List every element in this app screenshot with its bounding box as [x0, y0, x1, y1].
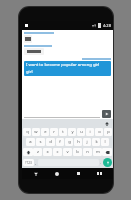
staticText: girl	[26, 69, 33, 75]
button[interactable]: c	[53, 148, 62, 156]
button[interactable]: Menu	[92, 168, 106, 179]
button[interactable]: ?123	[23, 159, 34, 166]
staticText: ?123	[25, 161, 32, 165]
button[interactable]: w	[32, 128, 40, 136]
button[interactable]: d	[46, 138, 55, 146]
button[interactable]: Message input	[24, 109, 100, 118]
button[interactable]: Back	[29, 168, 43, 179]
staticText: 4:28	[103, 23, 111, 28]
button[interactable]: i	[86, 128, 94, 136]
button[interactable]: Shift	[23, 148, 33, 156]
staticText: l	[104, 139, 106, 145]
button[interactable]: g	[65, 138, 73, 146]
staticText: c	[56, 149, 59, 155]
staticText: s	[39, 139, 42, 145]
staticText: j	[86, 139, 88, 145]
staticText: d	[49, 139, 52, 145]
staticText: y	[71, 129, 74, 135]
button[interactable]: b	[73, 148, 82, 156]
staticText: z	[37, 149, 39, 155]
staticText: b	[76, 149, 79, 155]
button[interactable]: q	[23, 128, 31, 136]
button[interactable]: Received message	[24, 48, 44, 55]
staticText: a	[29, 139, 32, 145]
button[interactable]: n	[83, 148, 92, 156]
staticText: .	[100, 160, 102, 165]
staticText: u	[80, 129, 83, 135]
button[interactable]: t	[59, 128, 67, 136]
staticText: x	[46, 149, 49, 155]
staticText: w	[34, 129, 38, 135]
staticText: h	[77, 139, 80, 145]
button[interactable]: Backspace	[102, 148, 112, 156]
button[interactable]: h	[74, 138, 82, 146]
staticText: q	[26, 129, 29, 135]
button[interactable]: Send	[102, 110, 111, 118]
button[interactable]: s	[36, 138, 45, 146]
staticText: t	[62, 129, 64, 135]
button[interactable]: k	[92, 138, 100, 146]
button[interactable]: r	[50, 128, 58, 136]
staticText: g	[68, 139, 71, 145]
button[interactable]: y	[68, 128, 76, 136]
staticText: r	[53, 129, 55, 135]
button[interactable]: l	[101, 138, 109, 146]
button[interactable]: v	[63, 148, 72, 156]
staticText: n	[86, 149, 89, 155]
staticText: I want to become popular among girl	[26, 62, 100, 68]
staticText: k	[95, 139, 98, 145]
button[interactable]: u	[77, 128, 85, 136]
button[interactable]: x	[43, 148, 52, 156]
button[interactable]: Voice input	[103, 158, 112, 167]
staticText: f	[59, 139, 61, 145]
button[interactable]: Received message	[24, 35, 32, 43]
button[interactable]: I want to become popular among girl	[24, 61, 111, 76]
button[interactable]: o	[95, 128, 103, 136]
button[interactable]: f	[56, 138, 64, 146]
staticText: e	[44, 129, 47, 135]
staticText: p	[107, 129, 110, 135]
staticText: o	[98, 129, 101, 135]
staticText: i	[89, 129, 91, 135]
button[interactable]: Home	[50, 168, 64, 179]
button[interactable]: e	[41, 128, 49, 136]
staticText: ,	[35, 160, 37, 165]
button[interactable]: m	[93, 148, 102, 156]
staticText: m	[96, 149, 100, 155]
button[interactable]: z	[33, 148, 42, 156]
button[interactable]: Recent apps	[71, 168, 85, 179]
button[interactable]: p	[104, 128, 112, 136]
staticText: v	[66, 149, 69, 155]
button[interactable]: j	[83, 138, 91, 146]
button[interactable]: a	[26, 138, 35, 146]
